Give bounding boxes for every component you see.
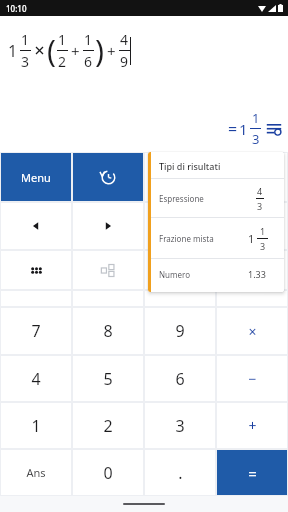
staticText: 1 [252,109,260,127]
button[interactable]: Sinistra [1,203,71,249]
button[interactable] [145,291,215,306]
staticText: 3 [260,240,266,252]
staticText: 3 [175,415,185,437]
staticText: Menu [21,170,51,185]
button[interactable]: Menu [1,153,71,201]
button[interactable]: 9 [145,308,215,354]
staticText: 0 [103,462,113,484]
button[interactable]: 4 [1,356,71,401]
staticText: = [228,118,238,140]
staticText: 1 [58,30,67,49]
button[interactable]: Destra [73,203,143,249]
staticText: Frazione mista [159,233,214,244]
staticText: ( [47,30,56,71]
staticText: . [178,462,183,484]
button[interactable] [217,153,287,201]
button[interactable]: Altri tasti [1,251,71,289]
button[interactable]: Tipi di risultati [264,119,284,139]
staticText: Espressione [159,193,204,204]
staticText: + [248,416,257,435]
staticText: + [107,41,116,61]
staticText: ) [95,30,104,71]
staticText: 6 [84,52,93,71]
staticText: Numero [159,269,190,280]
staticText: 3 [21,52,30,71]
button[interactable] [145,251,215,289]
button[interactable]: 5 [73,356,143,401]
button[interactable] [145,203,215,249]
button[interactable] [217,203,287,249]
staticText: 1 [239,119,248,139]
button[interactable]: + [217,403,287,448]
staticText: 1 [8,40,18,62]
staticText: 1.33 [248,268,266,280]
button[interactable]: 1 [1,403,71,448]
button[interactable]: Espressione [151,179,284,217]
staticText: 1 [21,30,30,49]
staticText: × [248,322,257,341]
button[interactable]: Cronologia [73,153,143,201]
staticText: = [248,463,257,483]
staticText: 4 [120,30,129,49]
button[interactable]: Frazione mista [151,218,284,258]
button[interactable]: − [217,356,287,401]
button[interactable]: 2 [73,403,143,448]
staticText: 10:10 [6,3,27,14]
staticText: − [248,369,257,388]
staticText: 1 [84,30,93,49]
staticText: 3 [257,200,263,212]
button[interactable]: Ans [1,450,71,495]
button[interactable]: 7 [1,308,71,354]
staticText: 8 [103,320,113,342]
button[interactable] [217,251,287,289]
staticText: 1 [31,415,41,437]
button[interactable]: 6 [145,356,215,401]
button[interactable]: . [145,450,215,495]
staticText: 4 [31,368,41,390]
staticText: 7 [31,320,41,342]
button[interactable] [217,291,287,306]
staticText: 6 [175,368,185,390]
button[interactable]: 0 [73,450,143,495]
staticText: 1 [260,225,266,237]
staticText: Ans [26,465,46,480]
staticText: 1 [248,231,255,246]
staticText: 2 [58,52,67,71]
staticText: 9 [175,320,185,342]
button[interactable]: 3 [145,403,215,448]
staticText: 2 [103,415,113,437]
staticText: 9 [120,52,129,71]
button[interactable]: Numero [151,259,284,289]
staticText: + [71,41,80,61]
button[interactable] [145,153,215,201]
button[interactable]: 8 [73,308,143,354]
button[interactable]: = [217,450,287,495]
staticText: Tipi di risultati [159,160,221,172]
staticText: 4 [257,185,263,197]
button[interactable]: Frazione [73,251,143,289]
staticText: 3 [252,130,260,148]
button[interactable]: × [217,308,287,354]
staticText: 5 [103,368,113,390]
